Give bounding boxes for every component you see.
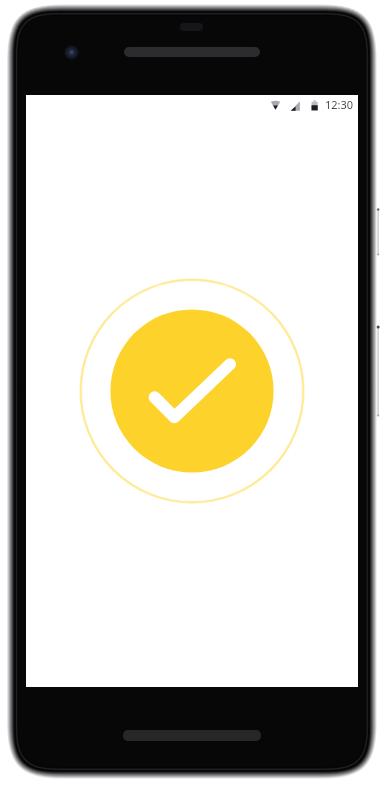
button[interactable]: Success	[80, 279, 304, 503]
staticText: 12:30	[325, 97, 354, 112]
